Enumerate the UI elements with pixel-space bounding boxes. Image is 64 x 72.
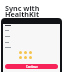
- staticText: Continue: [26, 65, 38, 69]
- button[interactable]: Continue: [5, 64, 58, 69]
- staticText: Sync with HealthKit: [5, 3, 40, 19]
